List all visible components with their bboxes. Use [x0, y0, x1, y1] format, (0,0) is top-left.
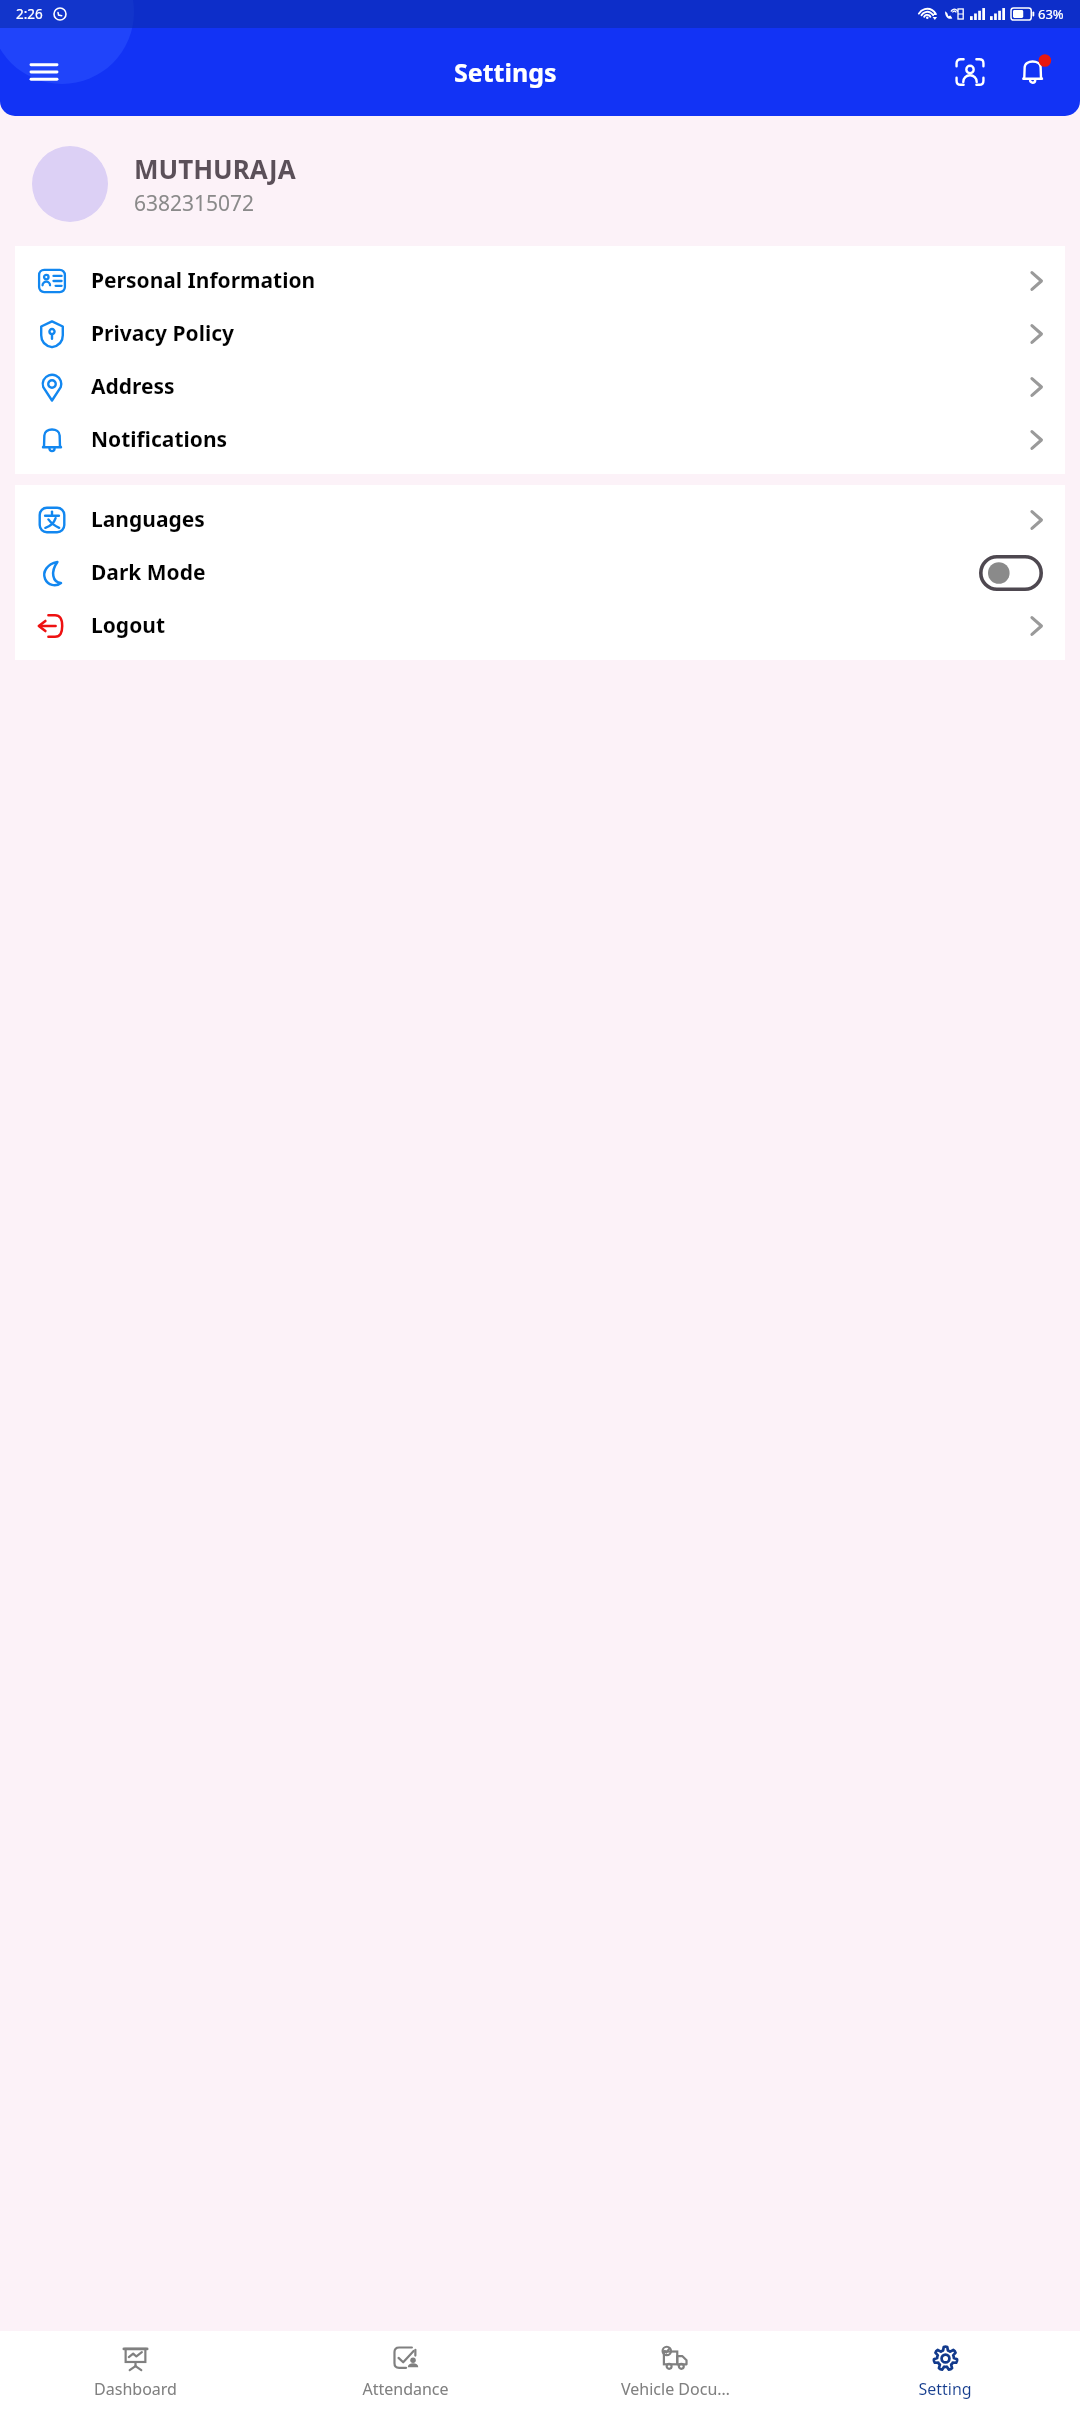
staticText: Vehicle Docu… — [621, 2378, 730, 2400]
button[interactable]: Languages — [15, 493, 1065, 546]
button[interactable]: Address — [15, 360, 1065, 413]
staticText: Logout — [91, 611, 166, 640]
button[interactable]: Personal Information — [15, 254, 1065, 307]
button[interactable]: Setting — [810, 2331, 1080, 2412]
button[interactable]: Dark Mode — [15, 546, 1065, 599]
staticText: Dark Mode — [91, 558, 206, 587]
staticText: 6382315072 — [134, 189, 255, 218]
button[interactable]: Dashboard — [0, 2331, 270, 2412]
button[interactable]: Notifications — [15, 413, 1065, 466]
staticText: Privacy Policy — [91, 319, 235, 348]
staticText: Address — [91, 372, 175, 401]
button[interactable]: Privacy Policy — [15, 307, 1065, 360]
button[interactable]: Menu — [22, 50, 66, 94]
button[interactable]: Notifications — [1010, 48, 1058, 96]
button[interactable]: Vehicle Docu… — [540, 2331, 810, 2412]
staticText: Notifications — [91, 425, 228, 454]
staticText: Languages — [91, 505, 205, 534]
staticText: Personal Information — [91, 266, 316, 295]
staticText: Setting — [918, 2378, 972, 2400]
staticText: Attendance — [362, 2378, 449, 2400]
button[interactable]: Logout — [15, 599, 1065, 652]
staticText: Dashboard — [94, 2378, 177, 2400]
button[interactable]: Face scan — [946, 48, 994, 96]
staticText: Settings — [454, 55, 557, 89]
staticText: 2:26 — [16, 5, 43, 23]
staticText: MUTHURAJA — [134, 151, 296, 186]
staticText: 63% — [1038, 5, 1064, 23]
button[interactable]: Dark mode toggle — [979, 555, 1043, 591]
button[interactable]: Attendance — [270, 2331, 540, 2412]
